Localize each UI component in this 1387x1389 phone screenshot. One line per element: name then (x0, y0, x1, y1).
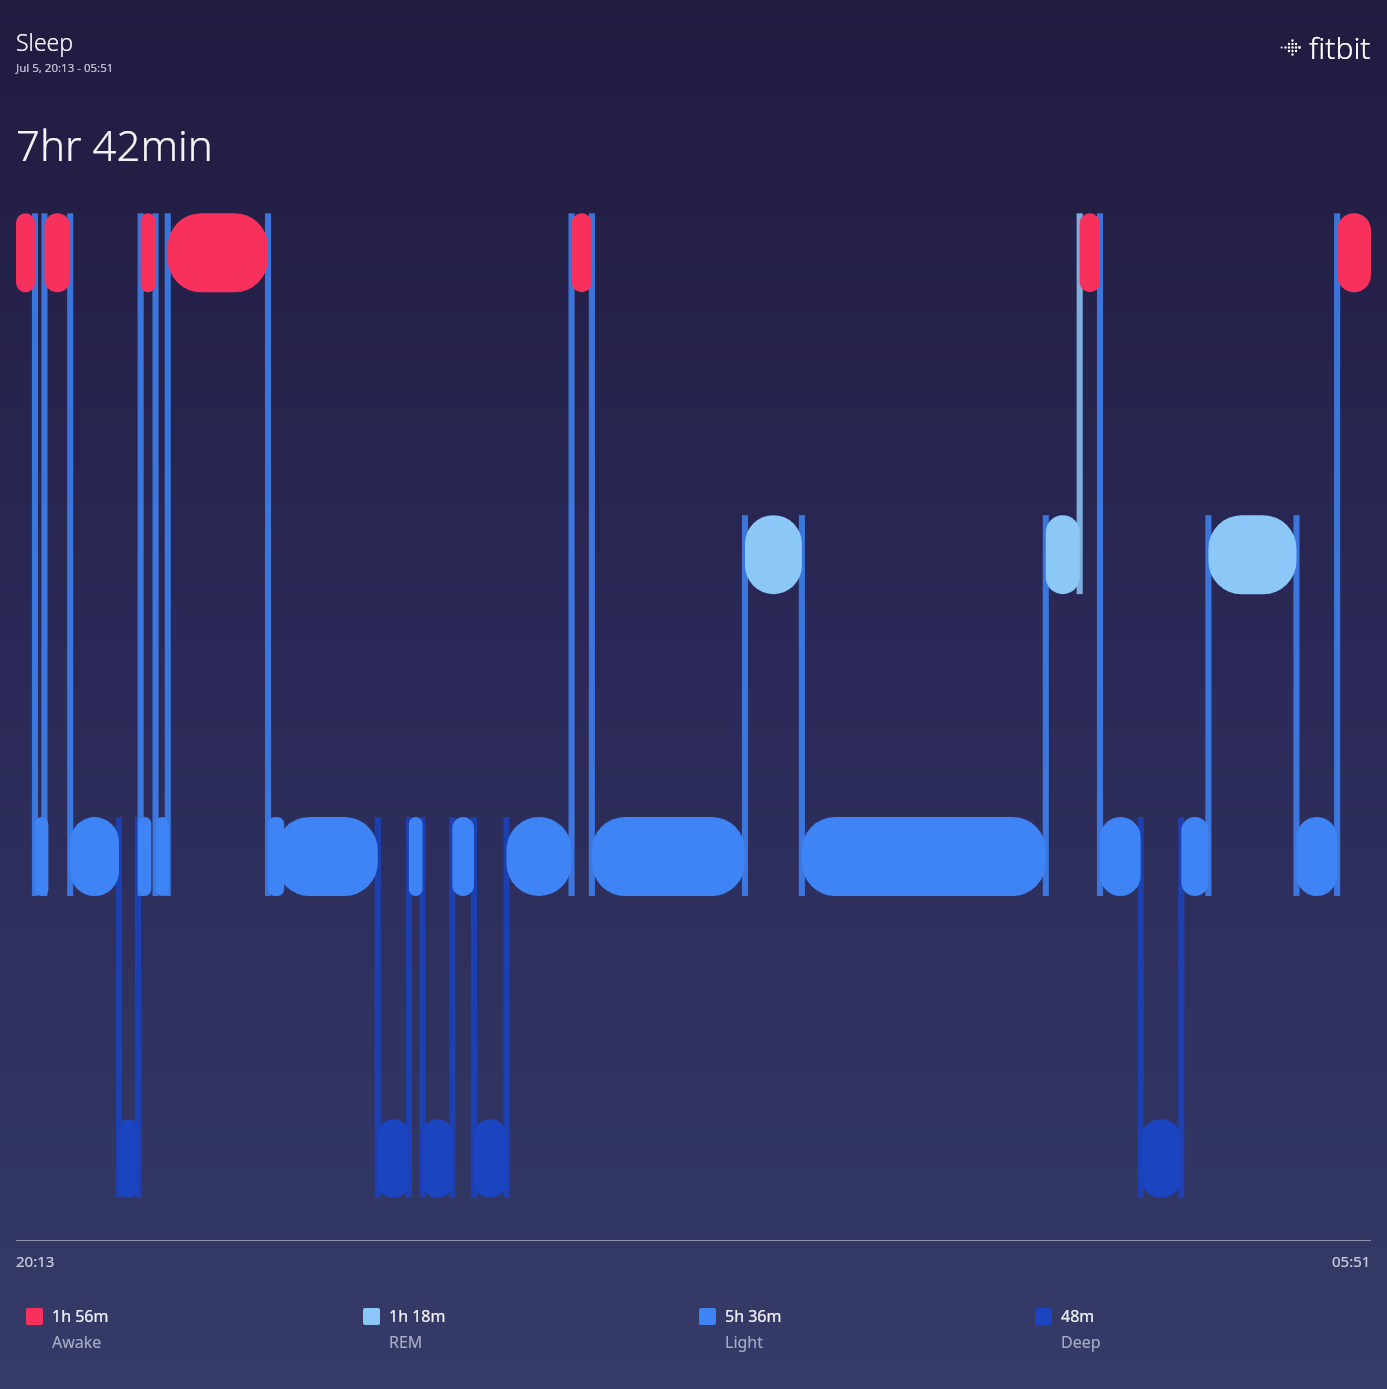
staticText: Sleep (16, 26, 74, 57)
staticText: 1h 56m (52, 1305, 109, 1327)
staticText: 1h 18m (389, 1305, 446, 1327)
staticText: Jul 5, 20:13 - 05:51 (16, 60, 114, 76)
staticText: 48m (1061, 1305, 1095, 1327)
button[interactable]: Fitbit (1283, 27, 1371, 68)
button[interactable]: 5h 36m (699, 1305, 1035, 1353)
button[interactable]: 1h 56m (26, 1305, 363, 1353)
staticText: fitbit (1309, 27, 1371, 68)
staticText: Light (725, 1331, 764, 1353)
staticText: 20:13 (16, 1251, 55, 1271)
staticText: 05:51 (1332, 1251, 1371, 1271)
staticText: 7hr 42min (16, 116, 213, 173)
button[interactable]: 48m (1035, 1305, 1371, 1353)
staticText: 5h 36m (725, 1305, 782, 1327)
staticText: REM (389, 1331, 423, 1353)
staticText: Awake (52, 1331, 102, 1353)
button[interactable]: 1h 18m (363, 1305, 699, 1353)
staticText: Deep (1061, 1331, 1101, 1353)
